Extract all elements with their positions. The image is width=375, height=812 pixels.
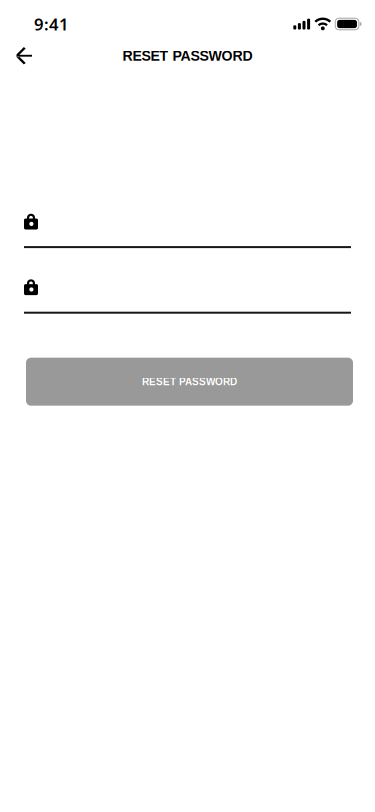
- button[interactable]: Back: [0, 43, 46, 68]
- staticText: RESET PASSWORD: [142, 376, 237, 387]
- button[interactable]: New password: [24, 213, 351, 248]
- button[interactable]: Confirm password: [24, 279, 351, 314]
- button[interactable]: RESET PASSWORD: [26, 358, 353, 406]
- staticText: 9:41: [34, 13, 69, 35]
- staticText: RESET PASSWORD: [122, 48, 252, 64]
